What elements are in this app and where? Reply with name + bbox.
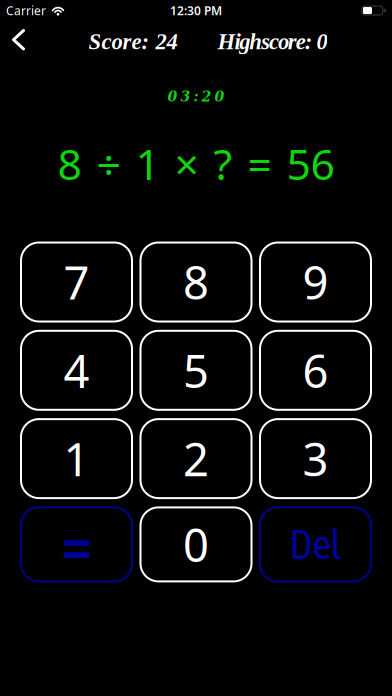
staticText: 1 [63, 428, 89, 489]
button[interactable]: 4 [20, 330, 133, 411]
button[interactable]: 7 [20, 241, 133, 322]
staticText: Highscore: 0 [217, 29, 327, 54]
staticText: 0 [183, 514, 209, 574]
staticText: Score: 24 [88, 29, 177, 54]
button[interactable] [0, 25, 45, 54]
staticText: 8 [183, 252, 209, 312]
button[interactable]: 1 [20, 418, 133, 499]
button[interactable]: 9 [259, 241, 372, 322]
button[interactable]: 8 [139, 241, 252, 322]
button[interactable]: Del [259, 506, 372, 582]
staticText: 5 [183, 340, 209, 400]
button[interactable]: 0 [139, 506, 252, 582]
staticText: Carrier [6, 2, 46, 18]
button[interactable] [20, 506, 133, 582]
button[interactable]: 2 [139, 418, 252, 499]
staticText: 0 3 : 2 0 [167, 88, 224, 105]
staticText: 4 [63, 340, 89, 400]
staticText: 12:30 PM [170, 2, 222, 18]
staticText: 3 [302, 428, 328, 489]
staticText: 9 [302, 252, 328, 312]
staticText: Del [289, 521, 341, 568]
button[interactable]: 5 [139, 330, 252, 411]
staticText: 8 ÷ 1 × ? = 56 [57, 135, 334, 192]
staticText: 6 [302, 340, 328, 400]
button[interactable]: 3 [259, 418, 372, 499]
button[interactable]: 6 [259, 330, 372, 411]
staticText: 2 [183, 428, 209, 489]
staticText: 7 [63, 252, 89, 312]
